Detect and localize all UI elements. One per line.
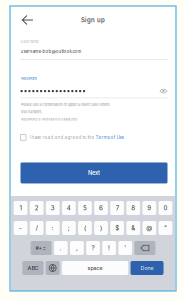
staticText: : [52,224,54,232]
staticText: Terms of Use [95,135,124,140]
button[interactable]: Show password [159,88,167,95]
button[interactable]: “ [158,221,172,235]
button[interactable]: Done [131,261,164,275]
button[interactable]: ; [62,221,76,235]
button[interactable]: 0 [158,201,172,215]
staticText: / [36,224,38,232]
button[interactable]: Next [20,162,167,183]
button[interactable]: 9 [142,201,156,215]
button[interactable]: I have read and agreed to the [20,134,167,140]
button[interactable]: ! [102,241,116,255]
button[interactable]: @ [142,221,156,235]
button[interactable]: , [70,241,84,255]
staticText: 2 [35,204,39,212]
staticText: I have read and agreed to the [29,135,95,140]
staticText: #+= [36,245,47,251]
staticText: Password [20,76,36,81]
button[interactable]: 8 [126,201,140,215]
button[interactable]: 4 [62,201,76,215]
button[interactable]: ’ [118,241,132,255]
staticText: 6 [99,204,103,212]
staticText: Please use a combination of upper & lowe… [20,102,109,107]
staticText: ) [100,224,102,232]
button[interactable]: ( [78,221,92,235]
staticText: Next [88,169,100,176]
button[interactable]: 6 [94,201,108,215]
staticText: & [131,224,135,232]
button[interactable]: Back [20,14,35,26]
staticText: 9 [147,204,151,212]
staticText: - [19,224,22,232]
staticText: 4 [67,204,71,212]
staticText: ’ [124,244,126,252]
staticText: space [88,265,103,271]
staticText: 3 [51,204,55,212]
staticText: 7 [116,204,119,212]
button[interactable]: ? [86,241,100,255]
button[interactable]: 1 [14,201,27,215]
button[interactable]: Emoji [46,261,60,275]
staticText: username-bob@outlook.com [20,49,81,54]
button[interactable]: : [46,221,60,235]
staticText: “ [164,224,167,232]
button[interactable]: ) [94,221,108,235]
staticText: Sign up [81,16,105,24]
staticText: ? [91,244,94,252]
staticText: 5 [83,204,87,212]
staticText: 8 [131,204,135,212]
button[interactable]: - [14,221,27,235]
button[interactable]: ABC [22,261,43,275]
button[interactable]: 2 [30,201,44,215]
staticText: @ [146,224,152,232]
staticText: 1 [20,204,22,212]
button[interactable]: $ [110,221,124,235]
staticText: ( [84,224,86,232]
button[interactable]: space [62,261,128,275]
button[interactable]: Delete [134,241,155,255]
staticText: Password is minimum 8 characters [20,117,77,121]
button[interactable]: #+= [31,241,52,255]
staticText: ; [68,224,70,232]
staticText: . [60,244,62,252]
staticText: ! [108,244,110,252]
staticText: and numbers. [20,109,42,114]
staticText: , [76,244,78,252]
staticText: 0 [163,204,167,212]
button[interactable]: / [30,221,44,235]
button[interactable]: . [54,241,68,255]
button[interactable]: & [126,221,140,235]
staticText: $ [115,224,119,232]
staticText: Username [20,39,38,44]
button[interactable]: 5 [78,201,92,215]
staticText: ABC [27,265,38,271]
button[interactable]: 3 [46,201,60,215]
button[interactable]: 7 [110,201,124,215]
staticText: Done [141,265,154,271]
